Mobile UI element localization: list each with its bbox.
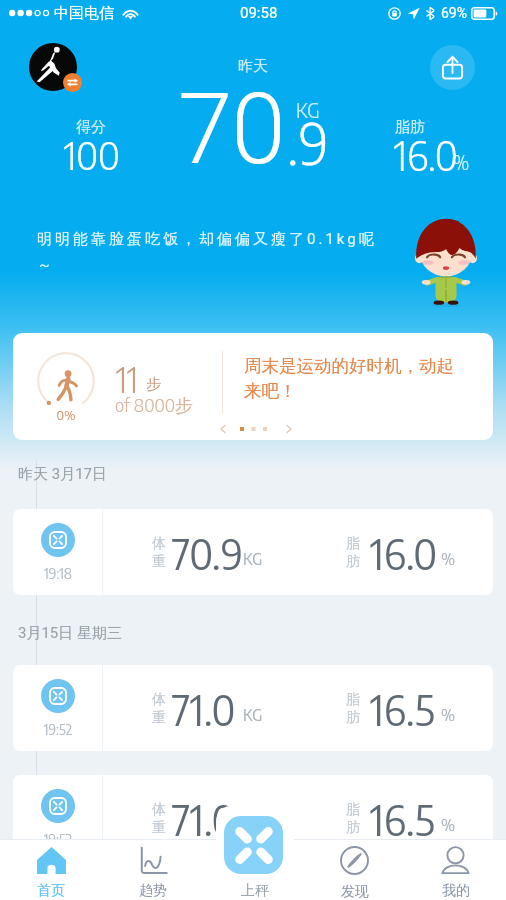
staticText: 昨天 3月17日: [18, 465, 108, 484]
staticText: 趋势: [139, 882, 167, 900]
staticText: 11: [116, 358, 138, 401]
staticText: 昨天: [0, 57, 506, 76]
staticText: 100: [64, 131, 120, 178]
button[interactable]: Share: [430, 45, 475, 90]
staticText: .9: [287, 107, 329, 177]
staticText: 体 重: [152, 801, 166, 836]
staticText: 周末是运动的好时机，动起来吧！: [244, 355, 464, 402]
staticText: 16.5: [370, 684, 435, 735]
button[interactable]: 19:52: [13, 665, 493, 751]
staticText: %: [441, 705, 456, 725]
staticText: 步: [146, 375, 161, 394]
staticText: 70: [178, 72, 285, 187]
button[interactable]: 19:18: [13, 509, 493, 595]
staticText: %: [441, 815, 456, 835]
staticText: of 8000步: [115, 393, 194, 417]
staticText: KG: [296, 97, 320, 122]
staticText: KG: [243, 549, 263, 569]
staticText: 体 重: [152, 535, 166, 570]
staticText: 得分: [57, 118, 125, 137]
button[interactable]: 首页: [0, 840, 102, 900]
staticText: 70.9: [172, 528, 244, 579]
staticText: KG: [243, 815, 263, 835]
staticText: 明明能靠脸蛋吃饭，却偏偏又瘦了0.1kg呢 ～: [37, 230, 397, 274]
staticText: 首页: [37, 882, 65, 900]
staticText: 71.0: [172, 684, 236, 735]
staticText: 3月15日 星期三: [18, 624, 123, 643]
staticText: 上秤: [216, 882, 294, 900]
staticText: 脂肪: [376, 118, 444, 137]
staticText: 69%: [441, 5, 467, 21]
staticText: 19:52: [33, 721, 83, 739]
staticText: 16.0: [394, 130, 458, 180]
staticText: 脂 肪: [346, 691, 360, 726]
staticText: 16.0: [370, 528, 438, 579]
staticText: 19:18: [33, 565, 83, 583]
staticText: 体 重: [152, 691, 166, 726]
button[interactable]: 0%: [13, 333, 493, 440]
staticText: 发现: [341, 883, 369, 900]
staticText: 09:58: [240, 4, 278, 22]
staticText: %: [453, 150, 470, 174]
button[interactable]: 19:52: [13, 775, 493, 861]
staticText: 我的: [442, 882, 470, 900]
staticText: 16.5: [370, 794, 435, 845]
button[interactable]: 发现: [304, 840, 405, 900]
button[interactable]: 我的: [405, 840, 506, 900]
button[interactable]: 趋势: [102, 840, 203, 900]
staticText: 脂 肪: [346, 535, 360, 570]
staticText: 脂 肪: [346, 801, 360, 836]
staticText: KG: [243, 705, 263, 725]
staticText: 71.0: [172, 794, 236, 845]
button[interactable]: 上秤: [224, 816, 283, 874]
staticText: 0%: [37, 407, 95, 423]
staticText: 19:52: [33, 831, 83, 849]
staticText: 中国电信: [54, 4, 114, 23]
staticText: %: [441, 549, 456, 569]
